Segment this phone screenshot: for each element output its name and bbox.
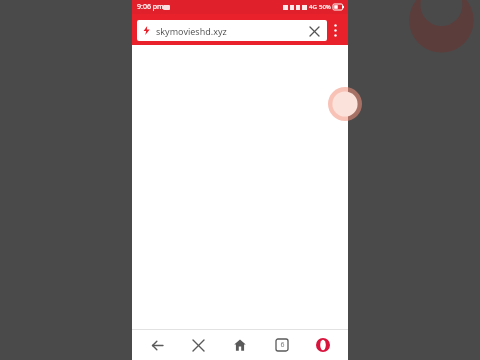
button[interactable]: Opera menu	[306, 330, 340, 360]
button[interactable]: More options	[327, 18, 343, 42]
button[interactable]: Home	[223, 330, 257, 360]
staticText: 6	[280, 340, 285, 350]
button[interactable]: Clear address	[306, 23, 322, 39]
button[interactable]: Tabs	[265, 330, 299, 360]
staticText: 9:06 pm	[137, 2, 164, 12]
staticText: 50%	[319, 3, 331, 11]
button[interactable]: Back	[140, 330, 174, 360]
staticText: 4G	[309, 3, 317, 11]
staticText: skymovieshd.xyz	[156, 25, 227, 37]
button[interactable]: skymovieshd.xyz	[137, 20, 327, 41]
button[interactable]: Stop loading	[181, 330, 215, 360]
